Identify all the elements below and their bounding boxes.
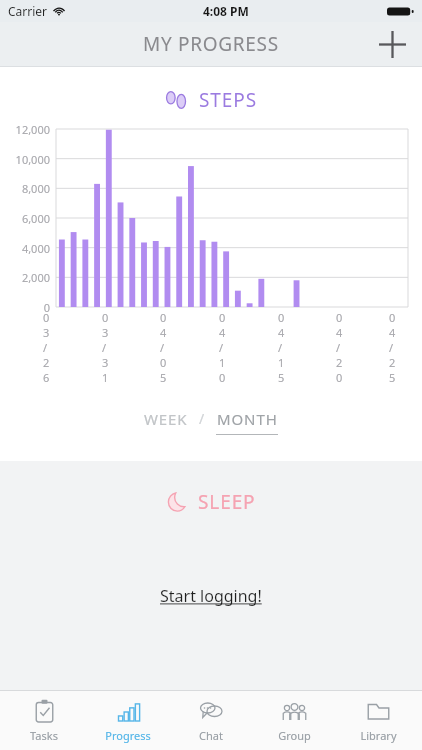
button[interactable]: Progress	[89, 691, 167, 750]
staticText: Start logging!	[160, 585, 262, 607]
staticText: /	[199, 409, 205, 428]
staticText: 6,000	[21, 211, 50, 226]
button[interactable]: Start logging!	[150, 579, 272, 613]
button[interactable]: Chat	[172, 691, 250, 750]
staticText: STEPS	[199, 87, 257, 113]
staticText: Tasks	[30, 728, 58, 743]
staticText: 4:08 PM	[203, 3, 249, 19]
staticText: WEEK	[144, 409, 188, 429]
staticText: 0	[43, 300, 50, 315]
staticText: SLEEP	[198, 489, 256, 515]
staticText: Group	[278, 728, 311, 743]
button[interactable]: Add	[370, 22, 414, 66]
button[interactable]: MONTH	[211, 407, 283, 437]
button[interactable]: Tasks	[5, 691, 83, 750]
staticText: Carrier	[8, 3, 48, 19]
button[interactable]: WEEK	[139, 407, 193, 431]
staticText: 10,000	[15, 152, 50, 167]
staticText: 2,000	[21, 270, 50, 285]
staticText: 12,000	[15, 122, 50, 137]
button[interactable]: Group	[255, 691, 333, 750]
staticText: 4,000	[21, 241, 50, 256]
button[interactable]: Library	[339, 691, 417, 750]
staticText: 8,000	[21, 181, 50, 196]
staticText: Library	[360, 728, 397, 743]
staticText: MONTH	[217, 409, 278, 429]
staticText: Chat	[199, 728, 223, 743]
staticText: Progress	[105, 728, 151, 743]
staticText: MY PROGRESS	[143, 31, 279, 57]
